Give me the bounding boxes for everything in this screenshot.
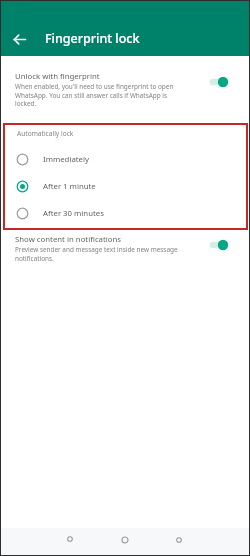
button[interactable]: After 1 minute bbox=[3, 175, 248, 197]
button[interactable]: Immediately bbox=[3, 148, 248, 170]
button[interactable]: Toggle on bbox=[208, 75, 228, 89]
button[interactable]: Back bbox=[8, 28, 30, 50]
staticText: Unlock with fingerprint bbox=[15, 71, 100, 82]
button[interactable]: Show content in notifications bbox=[0, 234, 250, 262]
button[interactable]: Toggle on bbox=[208, 238, 228, 252]
staticText: Fingerprint lock bbox=[45, 30, 140, 47]
staticText: When enabled, you'll need to use fingerp… bbox=[15, 82, 174, 107]
staticText: After 1 minute bbox=[43, 181, 96, 192]
button[interactable]: Unlock with fingerprint bbox=[0, 71, 250, 107]
button[interactable]: Recent apps bbox=[170, 531, 188, 549]
staticText: Show content in notifications bbox=[15, 234, 122, 245]
button[interactable]: Home bbox=[116, 531, 134, 549]
staticText: Preview sender and message text inside n… bbox=[15, 245, 178, 262]
button[interactable]: Back bbox=[61, 530, 79, 548]
staticText: Immediately bbox=[43, 154, 90, 165]
button[interactable]: After 30 minutes bbox=[3, 202, 248, 224]
staticText: After 30 minutes bbox=[43, 208, 104, 219]
staticText: Automatically lock bbox=[17, 129, 74, 138]
